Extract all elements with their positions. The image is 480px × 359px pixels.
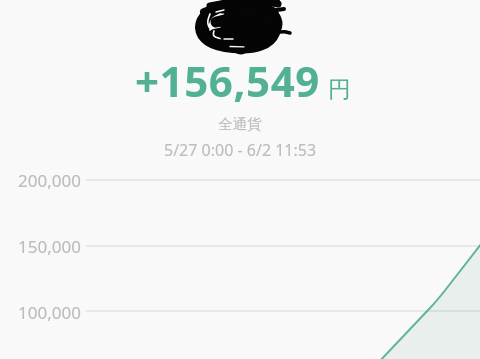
staticText: 5/27 0:00 - 6/2 11:53 bbox=[164, 139, 317, 161]
staticText: 200,000 bbox=[18, 169, 81, 192]
button[interactable]: 全通貨 bbox=[218, 115, 262, 133]
staticText: 100,000 bbox=[18, 301, 81, 324]
button[interactable]: 5/27 0:00 - 6/2 11:53 bbox=[164, 139, 317, 161]
staticText: 円 bbox=[328, 75, 351, 104]
staticText: +156,549 bbox=[135, 52, 320, 109]
other: Redacted account name bbox=[190, 0, 300, 56]
button[interactable]: +156,549 bbox=[135, 52, 351, 109]
staticText: 全通貨 bbox=[218, 115, 262, 133]
staticText: 150,000 bbox=[18, 235, 81, 258]
